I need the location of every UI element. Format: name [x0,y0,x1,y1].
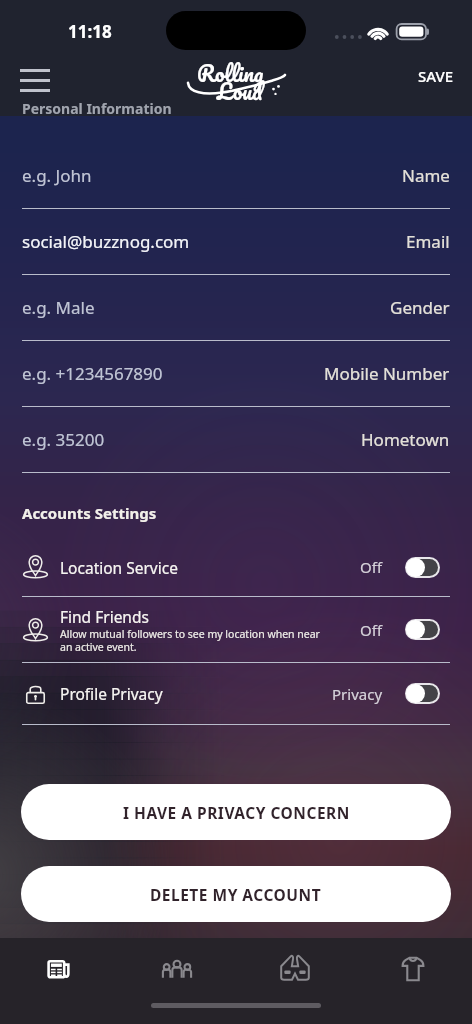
staticText: e.g. John [22,164,92,187]
staticText: e.g. Male [22,296,95,319]
button[interactable]: Toggle [405,683,440,704]
button[interactable]: Toggle [405,619,440,640]
button[interactable]: e.g. John [0,143,472,209]
staticText: Find Friends [60,606,149,627]
staticText: DELETE MY ACCOUNT [150,884,322,905]
button[interactable]: e.g. +1234567890 [0,341,472,407]
staticText: Off [360,557,383,577]
button[interactable]: Toggle [405,557,440,578]
staticText: Privacy [332,684,383,704]
staticText: Profile Privacy [60,683,163,704]
staticText: e.g. 35200 [22,428,105,451]
staticText: Email [406,230,450,253]
staticText: e.g. +1234567890 [22,362,163,385]
button[interactable]: e.g. 35200 [0,407,472,473]
staticText: Allow mutual followers to see my locatio… [60,627,320,654]
button[interactable]: Find Friends [0,597,472,663]
button[interactable]: News [0,938,118,1000]
staticText: Accounts Settings [22,503,157,523]
staticText: Off [360,620,383,640]
button[interactable]: DELETE MY ACCOUNT [21,866,451,922]
button[interactable]: Location Service [0,538,472,597]
staticText: Location Service [60,557,178,578]
staticText: Name [402,164,450,187]
button[interactable]: social@buzznog.com [0,209,472,275]
staticText: social@buzznog.com [22,230,190,253]
button[interactable]: e.g. Male [0,275,472,341]
staticText: I HAVE A PRIVACY CONCERN [123,802,350,823]
staticText: Gender [390,296,450,319]
staticText: Hometown [361,428,450,451]
staticText: Personal Information [22,99,172,118]
button[interactable]: Experiences [236,938,354,1000]
button[interactable]: I HAVE A PRIVACY CONCERN [21,784,451,840]
button[interactable]: Merch [354,938,472,1000]
button[interactable]: Menu [8,58,62,102]
button[interactable]: Profile Privacy [0,663,472,725]
button[interactable]: Friends [118,938,236,1000]
staticText: Loud [217,73,263,110]
staticText: Mobile Number [324,362,450,385]
button[interactable]: SAVE [410,60,462,92]
staticText: 11:18 [68,20,112,43]
staticText: Rolling [197,55,264,92]
staticText: SAVE [418,66,454,86]
